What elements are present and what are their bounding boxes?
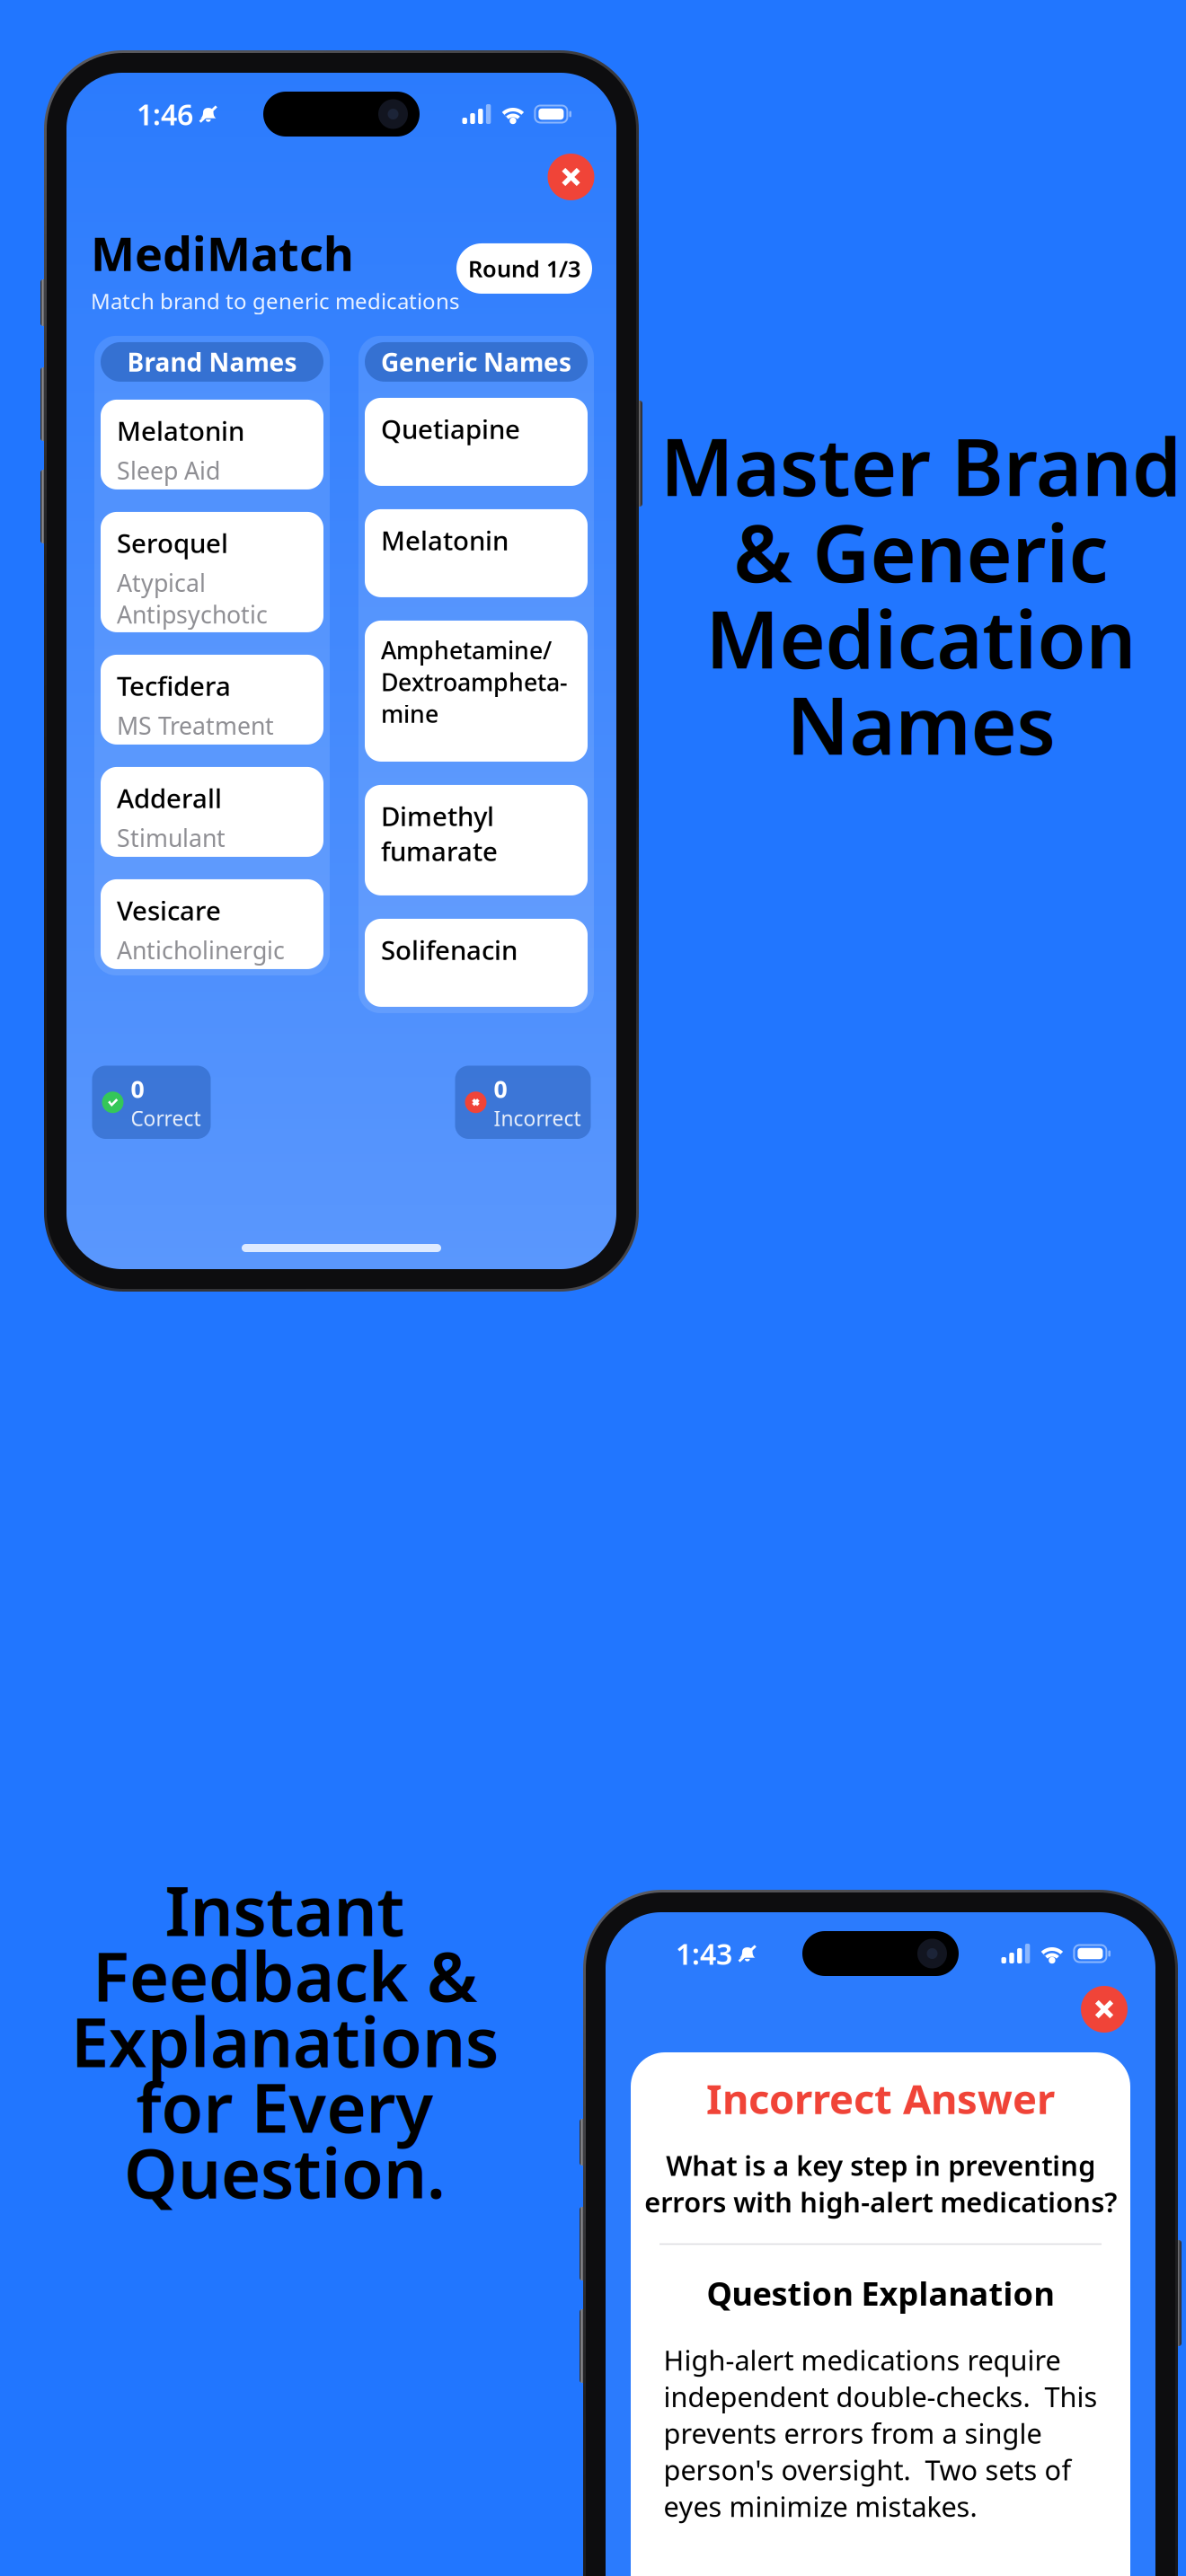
button[interactable]: Close [548,154,594,200]
button[interactable]: Melatonin [101,400,323,489]
staticText: Solifenacin [381,932,518,967]
staticText: Names [787,671,1055,776]
staticText: Stimulant [117,822,226,854]
button[interactable]: Tecfidera [101,655,323,745]
staticText: Master Brand [660,413,1182,518]
staticText: 1:46 [137,95,193,133]
staticText: Anticholinergic [117,934,285,966]
staticText: Melatonin [117,413,244,448]
staticText: Brand Names [127,345,297,379]
button[interactable]: Dimethyl fumarate [365,785,588,895]
button[interactable]: Amphetamine/ Dextroampheta- mine [365,621,588,762]
staticText: Question. [124,2126,446,2217]
staticText: for Every [136,2061,434,2152]
button[interactable]: Vesicare [101,879,323,969]
staticText: & Generic [734,499,1108,604]
staticText: Medication [706,585,1136,690]
staticText: Vesicare [117,893,221,928]
staticText: Melatonin [381,523,509,558]
staticText: Sleep Aid [117,454,220,486]
staticText: Correct [131,1105,201,1132]
staticText: Dimethyl fumarate [381,798,498,868]
button[interactable]: Close [1081,1986,1128,2033]
button[interactable]: 0 [455,1066,591,1139]
button[interactable]: Solifenacin [365,919,588,1007]
staticText: Seroquel [117,525,228,560]
button[interactable]: Quetiapine [365,398,588,486]
staticText: MS Treatment [117,709,274,741]
button[interactable]: 0 [92,1066,211,1139]
staticText: 0 [494,1073,507,1105]
staticText: High-alert medications require independe… [664,2342,1097,2525]
staticText: What is a key step in preventing errors … [644,2147,1117,2220]
staticText: Question Explanation [707,2272,1054,2315]
staticText: 1:43 [676,1935,732,1973]
staticText: Adderall [117,780,222,815]
staticText: Round 1/3 [468,253,580,284]
staticText: Match brand to generic medications [91,287,459,315]
staticText: Amphetamine/ Dextroampheta- mine [381,634,568,729]
staticText: Incorrect Answer [706,2071,1055,2125]
button[interactable]: Seroquel [101,512,323,632]
staticText: Tecfidera [117,668,231,703]
staticText: Quetiapine [381,411,520,446]
staticText: Explanations [71,1995,499,2086]
button[interactable]: Adderall [101,767,323,857]
button[interactable]: Round 1/3 [456,243,592,294]
staticText: Atypical Antipsychotic [117,567,268,630]
staticText: Incorrect [494,1105,581,1132]
staticText: Instant [165,1864,405,1955]
staticText: Generic Names [381,345,571,379]
button[interactable]: Melatonin [365,509,588,597]
staticText: MediMatch [91,222,354,284]
staticText: Feedback & [93,1930,477,2020]
staticText: 0 [131,1073,144,1105]
